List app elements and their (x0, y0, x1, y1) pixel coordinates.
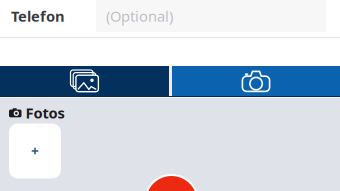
button[interactable]: Aufnehmen (144, 174, 199, 191)
staticText: Fotos (25, 103, 64, 122)
button[interactable]: Foto hinzufügen (9, 123, 61, 178)
button[interactable]: Fotos auswählen (0, 66, 169, 96)
button[interactable]: Kamera (172, 66, 340, 96)
button[interactable]: (Optional) (96, 0, 326, 32)
staticText: (Optional) (106, 6, 173, 26)
staticText: Telefon (11, 6, 65, 26)
